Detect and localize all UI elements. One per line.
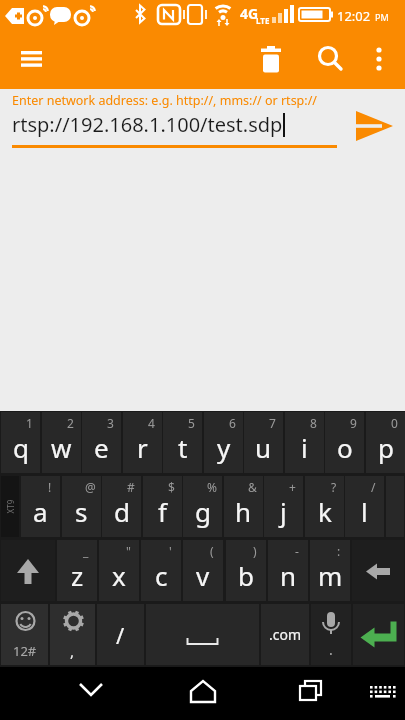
staticText: .com [269, 625, 302, 644]
button[interactable] [1, 540, 55, 601]
staticText: / [371, 479, 376, 495]
button[interactable]: b [226, 540, 266, 601]
staticText: 0 [391, 415, 398, 431]
button[interactable]: v [183, 540, 223, 601]
staticText: l [361, 494, 368, 529]
staticText: f [158, 494, 167, 529]
button[interactable] [68, 672, 114, 716]
button[interactable]: c [141, 540, 181, 601]
staticText: 12# [13, 642, 37, 660]
staticText: 3 [107, 415, 114, 431]
button[interactable] [362, 40, 398, 78]
button[interactable]: y [204, 412, 243, 473]
button[interactable]: i [285, 412, 324, 473]
staticText: o [337, 430, 353, 465]
staticText: 4 [148, 415, 155, 431]
button[interactable]: s [62, 476, 101, 537]
button[interactable]: h [224, 476, 263, 537]
staticText: _ [83, 543, 89, 559]
staticText: / [116, 620, 125, 650]
button[interactable]: , [50, 604, 95, 665]
staticText: y [217, 430, 231, 465]
button[interactable]: e [82, 412, 121, 473]
staticText: 6 [229, 415, 236, 431]
button[interactable]: n [268, 540, 308, 601]
button[interactable]: f [143, 476, 182, 537]
staticText: ' [169, 543, 172, 559]
staticText: 12:02 [337, 7, 371, 25]
button[interactable]: .com [261, 604, 309, 665]
staticText: ) [253, 543, 257, 559]
staticText: $ [168, 479, 175, 495]
staticText: ( [210, 543, 214, 559]
staticText: 1 [26, 415, 33, 431]
button[interactable] [252, 40, 290, 78]
staticText: q [13, 430, 29, 465]
staticText: : [337, 543, 341, 559]
button[interactable]: . [311, 604, 351, 665]
button[interactable]: p [366, 412, 405, 473]
button[interactable]: a [21, 476, 60, 537]
staticText: # [127, 479, 135, 495]
staticText: 9 [350, 415, 357, 431]
staticText: ? [331, 479, 337, 495]
button[interactable]: r [123, 412, 162, 473]
staticText: PM [375, 11, 389, 23]
button[interactable]: j [264, 476, 303, 537]
button[interactable] [352, 540, 404, 601]
button[interactable]: o [325, 412, 364, 473]
staticText: LTE [256, 15, 270, 26]
button[interactable]: z [57, 540, 97, 601]
button[interactable]: q [1, 412, 40, 473]
staticText: % [207, 479, 217, 495]
button[interactable] [180, 672, 226, 716]
staticText: rtsp://192.168.1.100/test.sdp [12, 111, 283, 138]
button[interactable]: u [244, 412, 283, 473]
button[interactable] [311, 40, 349, 78]
button[interactable]: / [97, 604, 144, 665]
staticText: 7 [269, 415, 276, 431]
staticText: h [235, 494, 252, 529]
button[interactable]: k [305, 476, 344, 537]
staticText: . [329, 640, 333, 659]
staticText: g [195, 494, 211, 529]
staticText: i [301, 430, 308, 465]
staticText: @ [85, 479, 96, 495]
button[interactable]: d [102, 476, 141, 537]
staticText: w [51, 430, 72, 465]
staticText: 4G [240, 4, 259, 23]
staticText: 8 [310, 415, 317, 431]
button[interactable]: l [345, 476, 384, 537]
staticText: e [94, 430, 109, 465]
staticText: t [178, 430, 188, 465]
staticText: + [289, 479, 296, 495]
button[interactable]: g [183, 476, 222, 537]
button[interactable]: x [99, 540, 139, 601]
staticText: r [137, 430, 148, 465]
button[interactable] [288, 672, 334, 716]
staticText: XT9 [4, 499, 15, 513]
staticText: Enter network address: e.g. http://, mms… [12, 92, 317, 109]
staticText: k [318, 494, 332, 529]
button[interactable] [146, 604, 259, 665]
button[interactable]: 12# [1, 604, 48, 665]
staticText: u [255, 430, 272, 465]
staticText: d [114, 494, 130, 529]
staticText: x [112, 558, 126, 593]
staticText: m [318, 558, 343, 593]
staticText: n [280, 558, 297, 593]
button[interactable] [348, 109, 400, 153]
staticText: v [196, 558, 210, 593]
button[interactable]: t [163, 412, 202, 473]
button[interactable]: m [310, 540, 350, 601]
staticText: j [280, 494, 287, 529]
staticText: - [295, 543, 299, 559]
button[interactable] [362, 672, 404, 716]
button[interactable] [353, 604, 404, 665]
staticText: 2 [67, 415, 74, 431]
button[interactable] [13, 43, 51, 75]
button[interactable]: w [42, 412, 81, 473]
staticText: , [70, 641, 75, 661]
staticText: & [248, 479, 257, 495]
staticText: b [238, 558, 254, 593]
